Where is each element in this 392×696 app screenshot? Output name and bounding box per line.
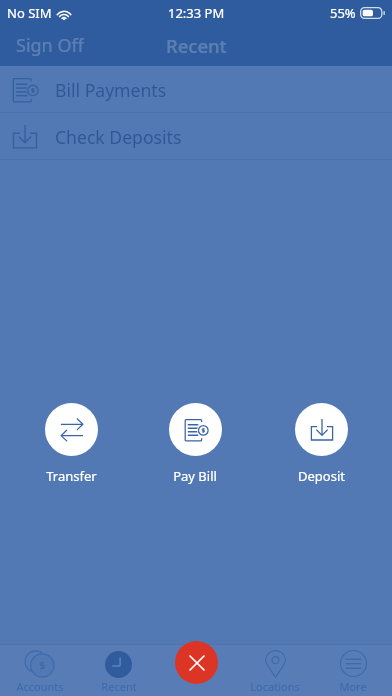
staticText: Recent — [166, 33, 227, 58]
button[interactable]: Recent — [79, 644, 158, 696]
staticText: More — [339, 679, 367, 694]
button[interactable]: Accounts — [0, 644, 79, 696]
staticText: Locations — [250, 679, 300, 694]
staticText: Bill Payments — [55, 78, 167, 102]
button[interactable]: Sign Off — [0, 25, 104, 65]
staticText: No SIM — [7, 4, 52, 22]
staticText: Pay Bill — [173, 467, 217, 485]
staticText: Transfer — [46, 467, 97, 485]
button[interactable]: Pay Bill — [155, 403, 235, 485]
staticText: Deposit — [298, 467, 345, 485]
staticText: Sign Off — [16, 33, 84, 57]
button[interactable]: More — [314, 644, 392, 696]
button[interactable]: Deposit — [281, 403, 361, 485]
button[interactable]: Locations — [236, 644, 314, 696]
staticText: 55% — [330, 4, 356, 22]
staticText: 12:33 PM — [168, 4, 225, 22]
button[interactable]: Bill Payments — [0, 66, 392, 113]
button[interactable]: Transfer — [31, 403, 111, 485]
staticText: Check Deposits — [55, 125, 182, 149]
staticText: Accounts — [16, 679, 64, 694]
button[interactable]: Check Deposits — [0, 113, 392, 160]
staticText: Recent — [101, 679, 137, 694]
button[interactable]: Close menu — [175, 641, 218, 684]
